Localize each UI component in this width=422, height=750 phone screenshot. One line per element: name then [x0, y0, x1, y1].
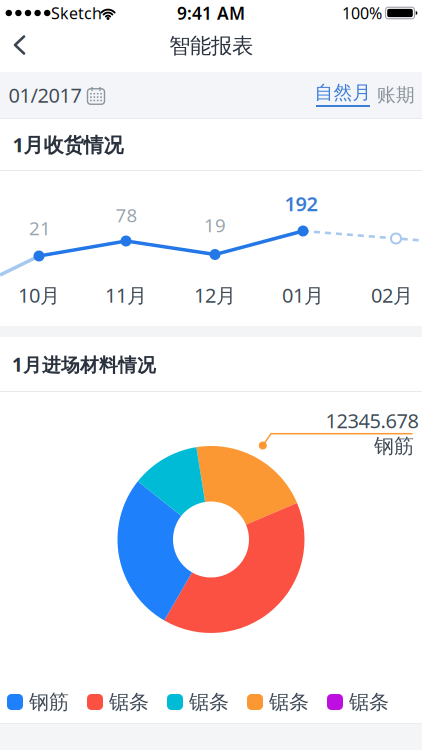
button[interactable]: 自然月 — [318, 72, 368, 118]
staticText: 01/2017 — [8, 82, 81, 108]
staticText: 1月进场材料情况 — [12, 352, 156, 377]
button[interactable]: Back — [0, 22, 44, 72]
staticText: Sketch — [51, 2, 102, 24]
staticText: 锯条 — [109, 690, 149, 714]
button[interactable]: 锯条 — [247, 691, 323, 713]
staticText: 10月 — [18, 282, 60, 308]
button[interactable]: 钢筋 — [7, 691, 83, 713]
staticText: 12345.678 — [325, 407, 418, 434]
button[interactable]: 01/2017 — [0, 72, 110, 118]
staticText: 锯条 — [189, 690, 229, 714]
button[interactable]: 锯条 — [327, 691, 403, 713]
staticText: 100% — [342, 2, 382, 24]
staticText: 12月 — [194, 282, 236, 308]
button[interactable]: 账期 — [376, 72, 416, 118]
staticText: 钢筋 — [374, 434, 414, 458]
staticText: 02月 — [371, 282, 413, 308]
staticText: 锯条 — [349, 690, 389, 714]
staticText: 锯条 — [269, 690, 309, 714]
staticText: 192 — [284, 190, 317, 217]
staticText: 21 — [29, 216, 51, 240]
staticText: 智能报表 — [169, 33, 253, 59]
button[interactable]: 锯条 — [87, 691, 163, 713]
staticText: 01月 — [282, 282, 324, 308]
staticText: 78 — [115, 203, 137, 227]
staticText: 1月收货情况 — [12, 131, 123, 158]
staticText: 9:41 AM — [177, 1, 245, 24]
staticText: 11月 — [105, 282, 147, 308]
staticText: 19 — [204, 213, 226, 237]
button[interactable]: 锯条 — [167, 691, 243, 713]
staticText: 账期 — [377, 83, 415, 106]
staticText: 钢筋 — [29, 690, 69, 714]
staticText: 自然月 — [314, 81, 371, 104]
